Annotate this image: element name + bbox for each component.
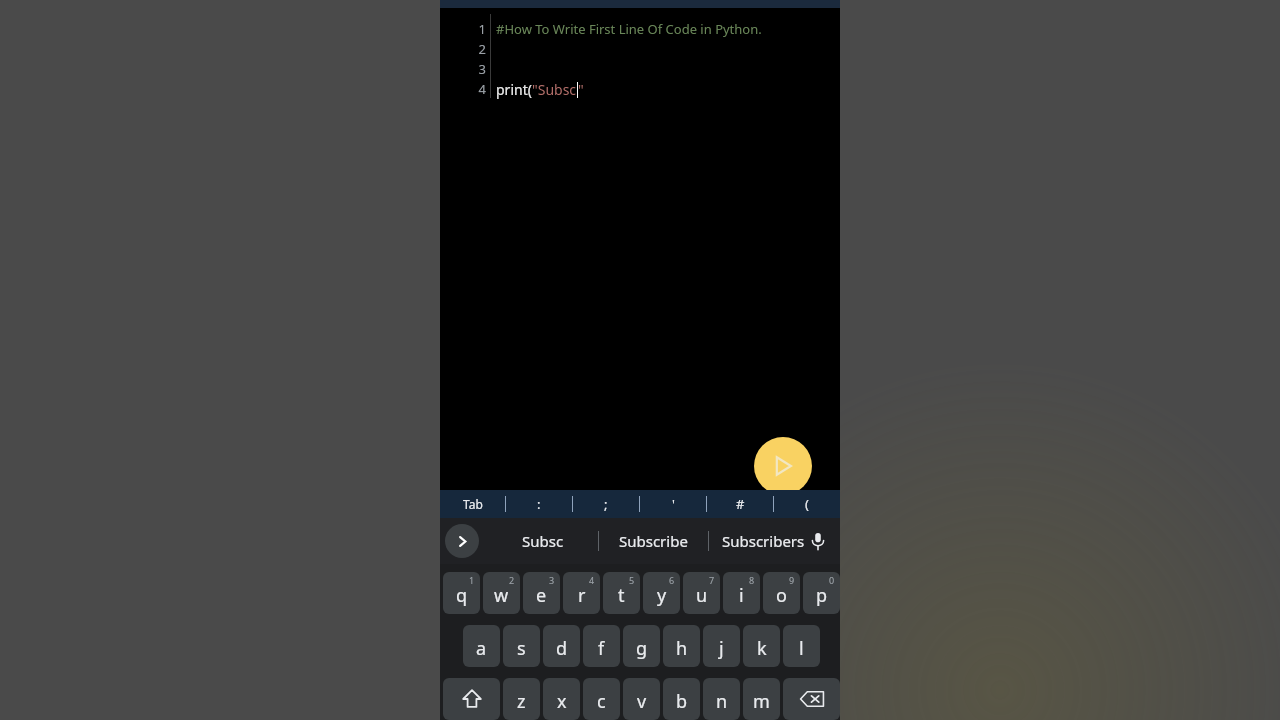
button[interactable]: r — [563, 572, 600, 614]
staticText: 5 — [629, 574, 635, 586]
staticText: 2 — [478, 40, 486, 58]
button[interactable]: Subsc — [488, 518, 598, 564]
button[interactable]: o — [763, 572, 800, 614]
button[interactable]: Subscribe — [599, 518, 708, 564]
button[interactable]: Voice input — [802, 525, 834, 557]
staticText: w — [494, 583, 509, 608]
button[interactable]: : — [506, 490, 572, 518]
button[interactable]: b — [663, 678, 700, 720]
button[interactable]: w — [483, 572, 520, 614]
button[interactable]: a — [463, 625, 500, 667]
button[interactable]: Shift — [443, 678, 500, 720]
staticText: p — [816, 583, 828, 608]
button[interactable]: ( — [774, 490, 840, 518]
button[interactable]: k — [743, 625, 780, 667]
staticText: t — [618, 583, 625, 608]
staticText: ' — [672, 495, 675, 513]
button[interactable]: ; — [573, 490, 639, 518]
staticText: v — [637, 689, 647, 714]
button[interactable]: v — [623, 678, 660, 720]
button[interactable]: # — [707, 490, 773, 518]
staticText: e — [536, 583, 547, 608]
staticText: y — [657, 583, 667, 608]
staticText: ; — [604, 495, 608, 513]
staticText: d — [556, 636, 568, 661]
staticText: s — [517, 636, 526, 661]
staticText: j — [719, 636, 724, 661]
button[interactable]: l — [783, 625, 820, 667]
button[interactable]: Run — [754, 437, 812, 495]
staticText: 9 — [789, 574, 795, 586]
button[interactable]: e — [523, 572, 560, 614]
staticText: : — [537, 495, 541, 513]
staticText: q — [456, 583, 468, 608]
staticText: print( — [496, 80, 532, 99]
staticText: u — [696, 583, 708, 608]
staticText: i — [739, 583, 744, 608]
staticText: #How To Write First Line Of Code in Pyth… — [496, 20, 762, 38]
staticText: 4 — [589, 574, 595, 586]
staticText: m — [753, 689, 770, 714]
staticText: 2 — [509, 574, 515, 586]
staticText: Subscribers — [722, 531, 805, 551]
staticText: x — [557, 689, 567, 714]
staticText: z — [517, 689, 526, 714]
button[interactable]: Backspace — [783, 678, 840, 720]
staticText: r — [578, 583, 586, 608]
staticText: h — [676, 636, 688, 661]
button[interactable]: Tab — [440, 490, 505, 518]
staticText: Subscribe — [619, 531, 688, 551]
staticText: 7 — [709, 574, 715, 586]
button[interactable]: f — [583, 625, 620, 667]
button[interactable]: s — [503, 625, 540, 667]
button[interactable]: More suggestions — [445, 524, 479, 558]
button[interactable]: q — [443, 572, 480, 614]
button[interactable]: t — [603, 572, 640, 614]
button[interactable]: u — [683, 572, 720, 614]
staticText: ( — [805, 495, 809, 513]
staticText: Subsc — [522, 531, 564, 551]
staticText: o — [776, 583, 787, 608]
staticText: 3 — [478, 60, 486, 78]
button[interactable]: i — [723, 572, 760, 614]
staticText: n — [716, 689, 728, 714]
staticText: f — [598, 636, 605, 661]
staticText: # — [736, 495, 745, 513]
staticText: 1 — [478, 20, 486, 38]
button[interactable]: z — [503, 678, 540, 720]
staticText: a — [476, 636, 487, 661]
staticText: k — [757, 636, 767, 661]
button[interactable]: Subscribers — [709, 518, 818, 564]
button[interactable]: d — [543, 625, 580, 667]
button[interactable]: h — [663, 625, 700, 667]
staticText: 8 — [749, 574, 755, 586]
staticText: 3 — [549, 574, 555, 586]
staticText: 1 — [469, 574, 475, 586]
staticText: c — [597, 689, 606, 714]
staticText: 4 — [478, 80, 486, 98]
staticText: b — [676, 689, 688, 714]
button[interactable]: x — [543, 678, 580, 720]
button[interactable]: j — [703, 625, 740, 667]
button[interactable]: p — [803, 572, 840, 614]
button[interactable]: g — [623, 625, 660, 667]
button[interactable]: y — [643, 572, 680, 614]
staticText: 6 — [669, 574, 675, 586]
button[interactable]: ' — [640, 490, 706, 518]
button[interactable]: m — [743, 678, 780, 720]
staticText: " — [578, 80, 584, 99]
staticText: Tab — [463, 496, 483, 512]
staticText: 0 — [829, 574, 835, 586]
button[interactable]: c — [583, 678, 620, 720]
staticText: "Subsc — [532, 80, 577, 99]
staticText: g — [636, 636, 648, 661]
staticText: l — [799, 636, 804, 661]
button[interactable]: n — [703, 678, 740, 720]
